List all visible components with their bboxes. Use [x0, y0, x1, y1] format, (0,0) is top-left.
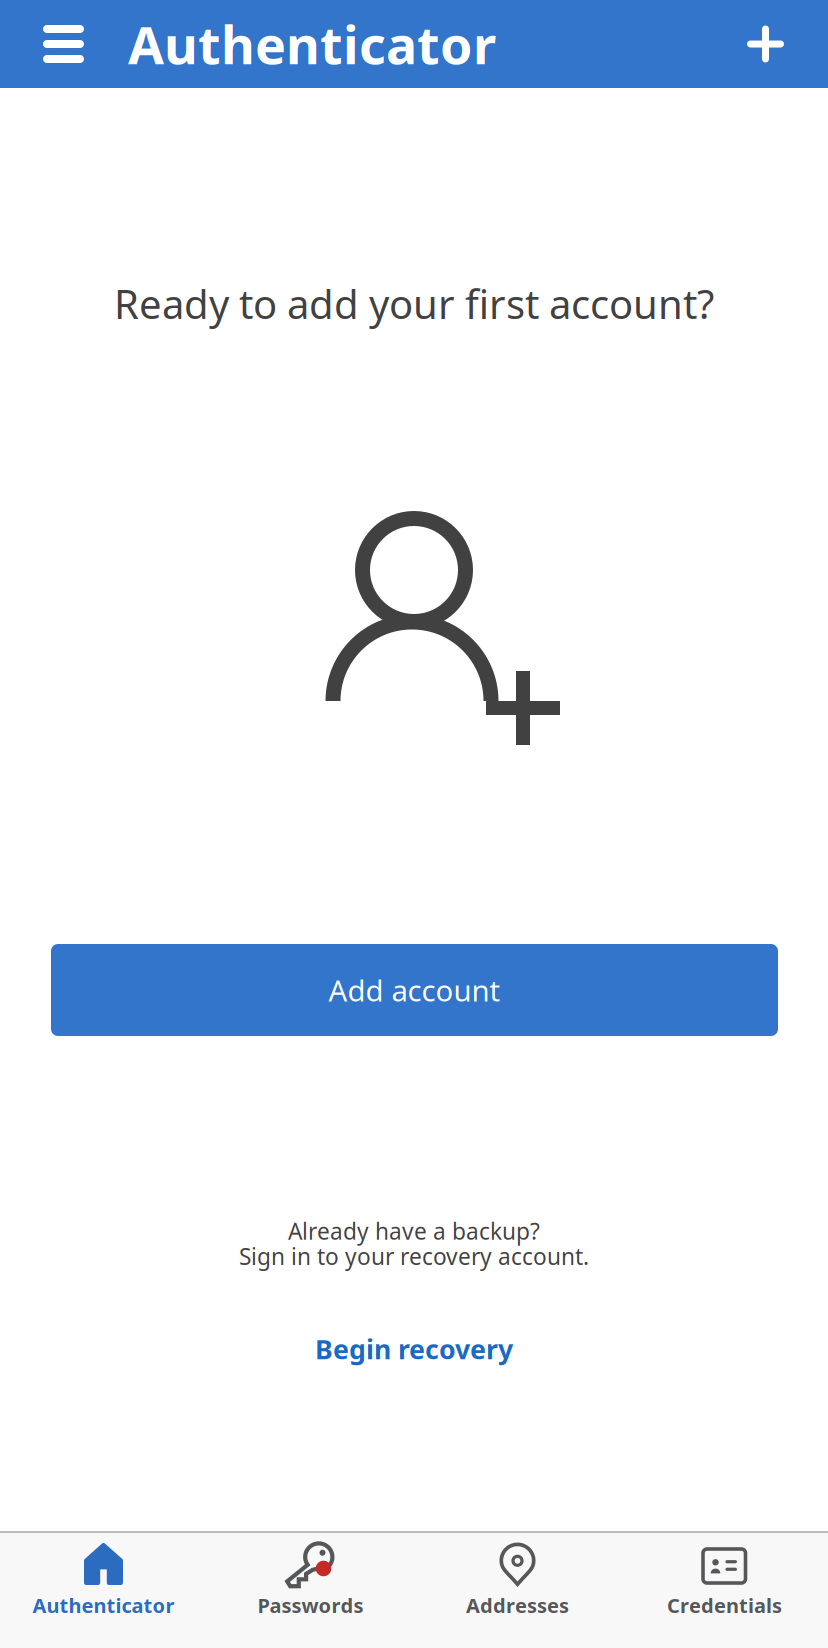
button[interactable]: Credentials — [621, 1531, 828, 1648]
button[interactable]: Add account — [721, 0, 828, 87]
staticText: Ready to add your first account? — [114, 277, 714, 330]
staticText: Already have a backup? — [288, 1216, 540, 1246]
staticText: Passwords — [257, 1592, 363, 1619]
staticText: Add account — [328, 970, 500, 1009]
button[interactable]: Addresses — [414, 1531, 621, 1648]
button[interactable]: Passwords — [207, 1531, 414, 1648]
button[interactable]: Add account — [51, 944, 778, 1036]
staticText: Credentials — [667, 1592, 782, 1619]
button[interactable]: Begin recovery — [0, 1323, 828, 1375]
staticText: Begin recovery — [315, 1331, 513, 1367]
staticText: Sign in to your recovery account. — [239, 1241, 589, 1271]
staticText: Authenticator — [128, 9, 496, 79]
button[interactable]: Menu — [0, 0, 128, 88]
staticText: Addresses — [466, 1592, 569, 1619]
button[interactable]: Authenticator — [0, 1531, 207, 1648]
staticText: Authenticator — [32, 1592, 174, 1619]
